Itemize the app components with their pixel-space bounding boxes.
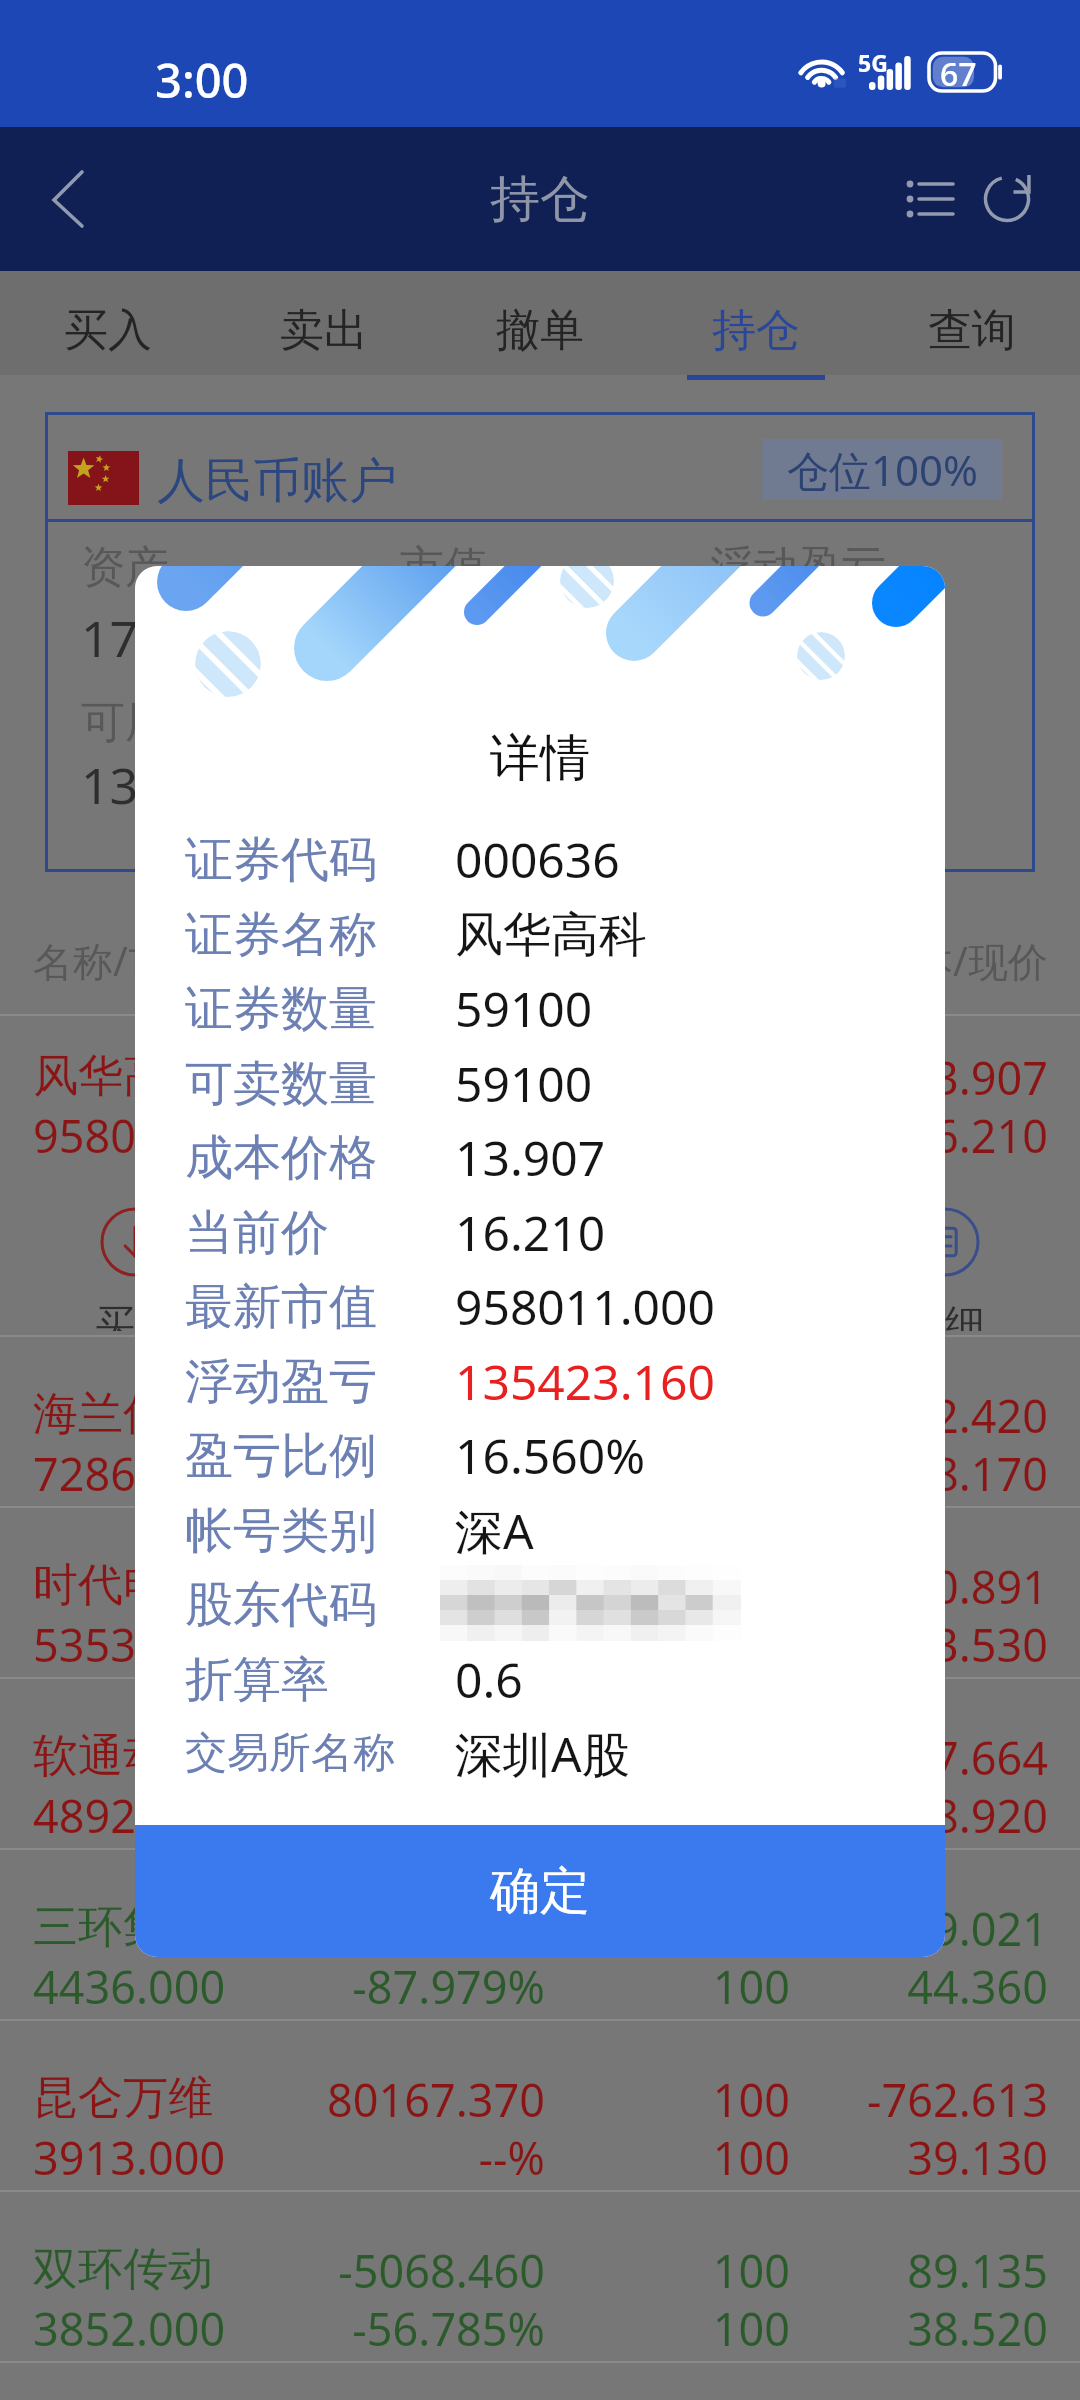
staticText: 浮动盈亏 — [185, 1352, 377, 1412]
button[interactable]: 撤单 — [540, 1191, 810, 1331]
button[interactable]: Back — [34, 145, 102, 253]
staticText: 135423.160 — [250, 1047, 545, 1105]
staticText: 三环集团 — [33, 1899, 213, 1956]
button[interactable]: 时代电气 — [0, 1508, 1080, 1679]
button[interactable]: 卖出 — [216, 271, 432, 375]
staticText: 38.520 — [790, 2298, 1048, 2356]
button[interactable]: 明细 — [810, 1191, 1080, 1331]
staticText: 44.360 — [790, 1956, 1048, 2014]
staticText: 撤单 — [496, 303, 584, 358]
button[interactable]: List — [885, 135, 971, 263]
staticText: 2.420 — [790, 1385, 1048, 1443]
staticText: 100 — [545, 1956, 790, 2014]
button[interactable]: 持仓 — [648, 271, 864, 375]
staticText: 可卖数量 — [185, 1054, 377, 1114]
staticText: 728610.000 — [33, 1443, 250, 1501]
staticText: 证券代码 — [185, 830, 377, 890]
staticText: 3:00 — [155, 48, 249, 112]
button[interactable]: 仓位100% — [762, 439, 1002, 500]
staticText: 软通动力 — [33, 1728, 213, 1785]
button[interactable]: 风华高科 — [0, 1016, 1080, 1337]
button[interactable]: 软通动力 — [0, 1679, 1080, 1850]
staticText: 卖出 — [365, 1299, 445, 1331]
staticText: 16.560% — [455, 1423, 646, 1488]
staticText: 100 — [545, 1614, 790, 1672]
staticText: -762.613 — [790, 2069, 1048, 2127]
staticText: 7.430% — [250, 1785, 545, 1843]
staticText: 可用 — [81, 695, 169, 750]
staticText: 100 — [545, 1105, 790, 1163]
staticText: 市值 — [400, 540, 488, 595]
staticText: 0.6 — [455, 1647, 523, 1712]
staticText: 3913.000 — [33, 2127, 226, 2185]
staticText: 证券数量 — [185, 979, 377, 1039]
staticText: 买入 — [64, 303, 152, 358]
staticText: 35781.200 — [250, 1385, 545, 1443]
staticText: 5G — [858, 47, 888, 78]
button[interactable]: 查询 — [864, 271, 1080, 375]
staticText: 958011.000 — [33, 1105, 250, 1163]
staticText: 000636 — [455, 827, 620, 892]
staticText: 89.135 — [790, 2240, 1048, 2298]
staticText: 5.210% — [250, 1614, 545, 1672]
staticText: 80167.370 — [250, 2069, 545, 2127]
staticText: 13.907 — [455, 1125, 606, 1190]
staticText: 100 — [545, 2240, 790, 2298]
staticText: 帐号类别 — [185, 1501, 377, 1561]
button[interactable]: Refresh — [966, 135, 1048, 263]
staticText: 958011.000 — [455, 1274, 715, 1339]
staticText: 时代电气 — [33, 1557, 213, 1614]
staticText: 100 — [545, 1385, 790, 1443]
button[interactable]: 双环传动 — [0, 2192, 1080, 2363]
staticText: 双环传动 — [33, 2241, 213, 2298]
button[interactable]: 卖出 — [270, 1191, 540, 1331]
staticText: 人民币账户 — [157, 451, 397, 511]
staticText: 135423.160 — [455, 1349, 715, 1414]
staticText: 16.210 — [455, 1200, 606, 1265]
staticText: -87.979% — [250, 1956, 545, 2014]
staticText: 100 — [545, 1556, 790, 1614]
staticText: 16.560% — [250, 1105, 545, 1163]
staticText: 12043.700 — [250, 1556, 545, 1614]
button[interactable]: 买入 — [0, 1191, 270, 1331]
staticText: 178 — [81, 604, 167, 672]
staticText: 交易所名称 — [185, 1727, 395, 1780]
staticText: 成本价格 — [185, 1128, 377, 1188]
staticText: 39.130 — [790, 2127, 1048, 2185]
staticText: 浮动盈亏 — [710, 540, 886, 595]
staticText: 买入 — [95, 1299, 175, 1331]
button[interactable]: 确定 — [135, 1825, 945, 1957]
button[interactable]: 昆仑万维 — [0, 2021, 1080, 2192]
staticText: 5353.000 — [33, 1614, 226, 1672]
button[interactable]: 撤单 — [432, 271, 648, 375]
button[interactable]: 海兰信息 — [0, 1337, 1080, 1508]
staticText: 100 — [545, 2127, 790, 2185]
staticText: 9.870% — [250, 1443, 545, 1501]
staticText: 风华高科 — [455, 905, 647, 965]
staticText: 仓位100% — [787, 441, 978, 498]
staticText: 持仓 — [712, 303, 800, 358]
staticText: 最新市值 — [185, 1277, 377, 1337]
staticText: 0.891 — [790, 1556, 1048, 1614]
staticText: 8.920 — [790, 1785, 1048, 1843]
staticText: 证券名称 — [185, 905, 377, 965]
button[interactable]: 买入 — [0, 271, 216, 375]
staticText: 59100 — [455, 976, 593, 1041]
staticText: 3852.000 — [33, 2298, 226, 2356]
staticText: 股东代码 — [185, 1575, 377, 1635]
staticText: 9921.400 — [250, 1727, 545, 1785]
staticText: 8.170 — [790, 1443, 1048, 1501]
staticText: 昆仑万维 — [33, 2070, 213, 2127]
staticText: 3.907 — [790, 1047, 1048, 1105]
staticText: 9.021 — [790, 1898, 1048, 1956]
staticText: 4436.000 — [33, 1956, 226, 2014]
staticText: 4892.000 — [33, 1785, 226, 1843]
staticText: 盈亏比例 — [185, 1426, 377, 1486]
staticText: 持仓 — [490, 168, 590, 231]
staticText: 3.530 — [790, 1614, 1048, 1672]
staticText: -56.785% — [250, 2298, 545, 2356]
staticText: 资产 — [81, 540, 169, 595]
staticText: 6.210 — [790, 1105, 1048, 1163]
staticText: 当前价 — [185, 1203, 329, 1263]
button[interactable]: 三环集团 — [0, 1850, 1080, 2021]
